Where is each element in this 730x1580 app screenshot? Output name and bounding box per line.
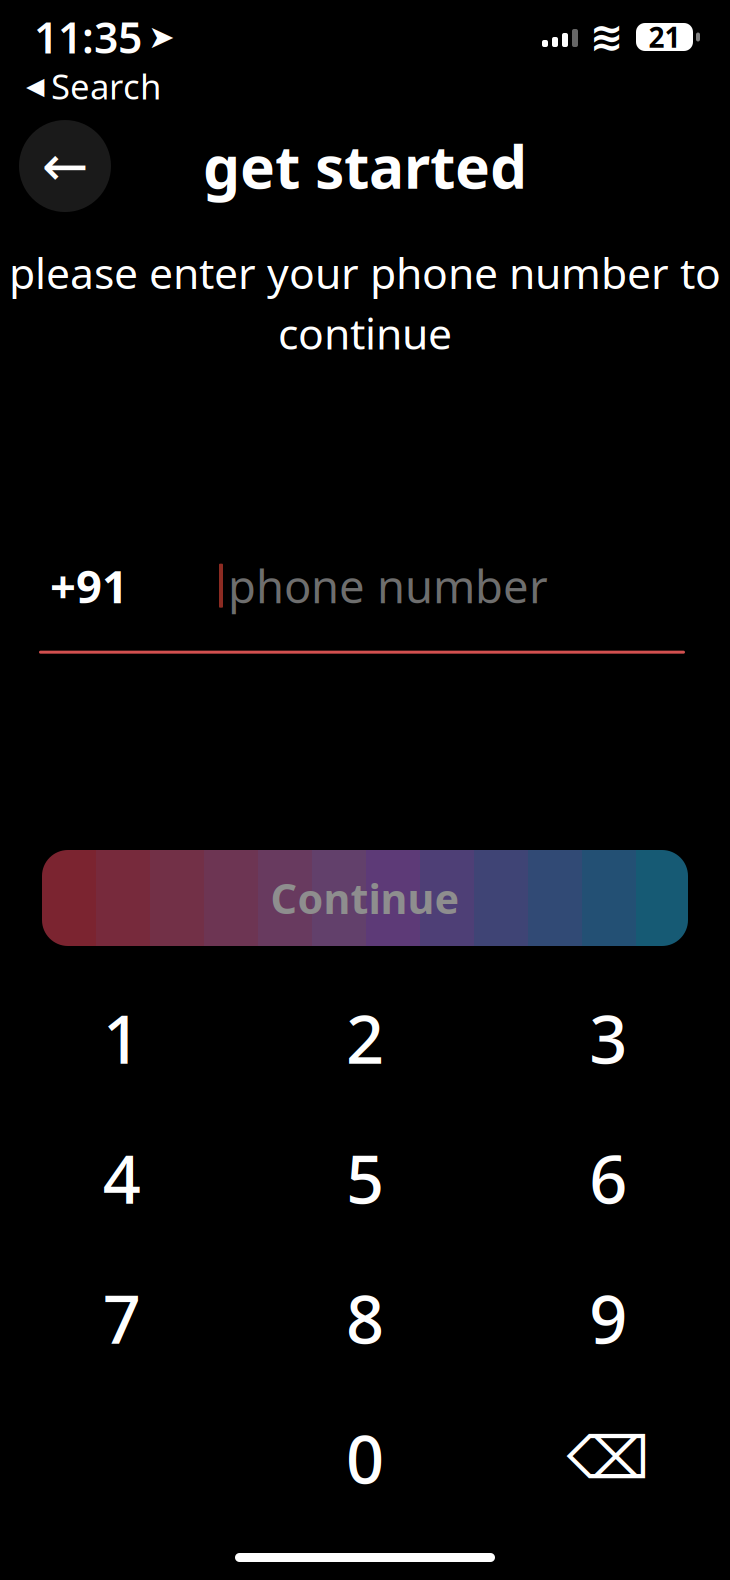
button[interactable]: ◀ [20, 60, 167, 112]
staticText: 9 [589, 1274, 627, 1362]
button[interactable]: 3 [487, 968, 730, 1108]
staticText: +91 [50, 556, 128, 616]
staticText: Continue [270, 871, 459, 925]
staticText: 6 [589, 1134, 627, 1222]
button[interactable]: 6 [487, 1108, 730, 1248]
button[interactable]: 0 [243, 1388, 487, 1528]
button[interactable]: 4 [0, 1108, 243, 1248]
staticText: 7 [103, 1274, 141, 1362]
staticText: get started [203, 127, 527, 205]
button[interactable]: 8 [243, 1248, 487, 1388]
staticText: 5 [346, 1134, 384, 1222]
staticText: ➤ [148, 19, 175, 55]
button[interactable]: 1 [0, 968, 243, 1108]
staticText: 8 [346, 1274, 384, 1362]
button[interactable]: 9 [487, 1248, 730, 1388]
staticText: ⌫ [567, 1425, 650, 1491]
staticText: 2 [346, 994, 384, 1082]
staticText: 1 [103, 994, 141, 1082]
staticText: 4 [103, 1134, 141, 1222]
staticText: 3 [589, 994, 627, 1082]
staticText: ◀ [26, 72, 44, 100]
staticText: phone number [228, 556, 548, 616]
staticText: Search [51, 63, 161, 109]
staticText: ← [41, 134, 88, 198]
button[interactable]: 5 [243, 1108, 487, 1248]
button[interactable]: Delete [487, 1388, 730, 1528]
staticText: ≋ [590, 14, 624, 60]
staticText: 11:35 [34, 9, 142, 65]
staticText: 0 [346, 1414, 384, 1502]
staticText: 21 [648, 18, 680, 56]
staticText: please enter your phone number to [9, 244, 721, 301]
button[interactable]: Continue [42, 850, 688, 946]
button[interactable]: 2 [243, 968, 487, 1108]
button[interactable]: 7 [0, 1248, 243, 1388]
staticText: continue [278, 305, 452, 361]
button[interactable]: Back [19, 120, 111, 212]
